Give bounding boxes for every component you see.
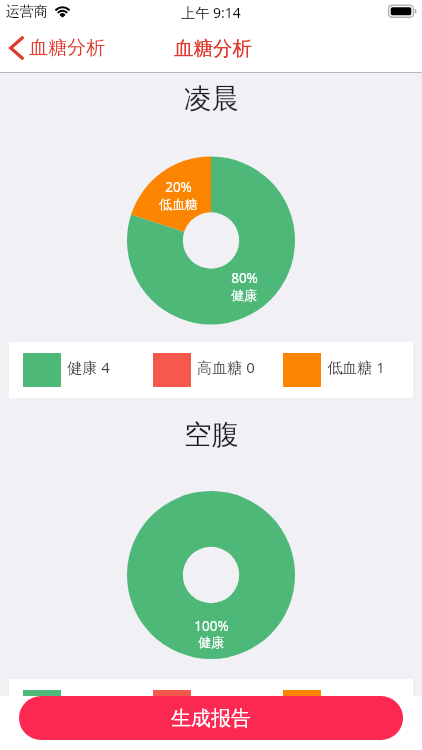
staticText: 血糖分析: [174, 36, 252, 61]
staticText: 健康: [231, 287, 257, 303]
staticText: 高血糖 0: [197, 357, 255, 377]
staticText: 健康: [198, 634, 224, 650]
staticText: 健康 4: [67, 694, 110, 714]
button[interactable]: 返回: [0, 30, 115, 66]
staticText: 20%: [165, 178, 192, 196]
staticText: 80%: [231, 269, 258, 287]
staticText: 100%: [194, 617, 229, 635]
staticText: 低血糖 0: [327, 694, 385, 714]
staticText: 高血糖 0: [197, 694, 255, 714]
staticText: 空腹: [184, 418, 239, 453]
staticText: 低血糖 1: [327, 357, 385, 377]
staticText: 上午 9:14: [181, 3, 241, 22]
other: 返回: [9, 36, 24, 60]
staticText: 健康 4: [67, 357, 110, 377]
staticText: 血糖分析: [29, 36, 105, 60]
staticText: 低血糖: [159, 196, 198, 212]
staticText: 凌晨: [184, 82, 239, 117]
staticText: 血糖分析: [174, 36, 252, 61]
staticText: 运营商: [6, 3, 48, 21]
staticText: 生成报告: [171, 706, 251, 731]
button[interactable]: 生成报告: [19, 696, 403, 740]
